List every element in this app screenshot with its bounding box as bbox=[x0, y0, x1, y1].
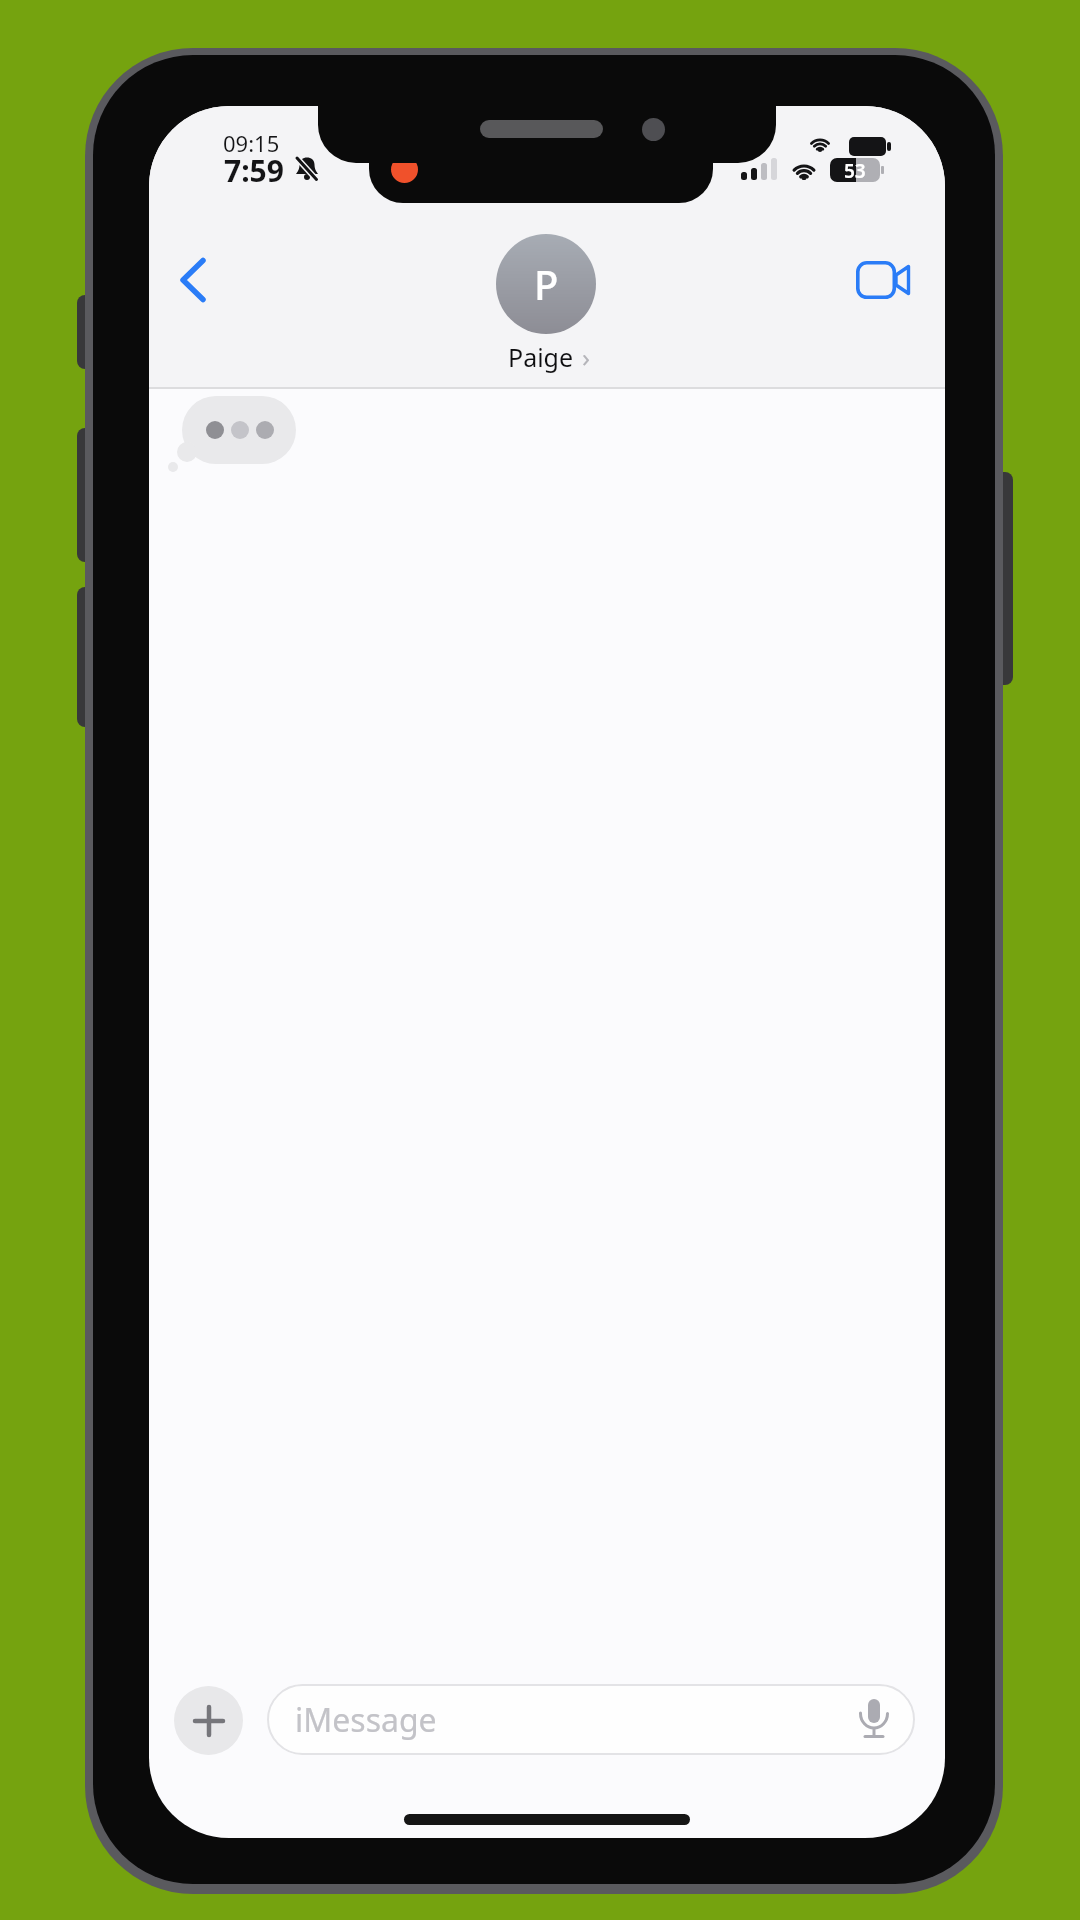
button[interactable] bbox=[839, 242, 929, 318]
staticText: › bbox=[582, 339, 591, 374]
button[interactable] bbox=[157, 244, 229, 316]
staticText: 53 bbox=[844, 158, 866, 182]
staticText: 7:59 bbox=[224, 150, 284, 186]
button[interactable]: P bbox=[496, 234, 596, 334]
staticText: iMessage bbox=[295, 1698, 437, 1742]
staticText: P bbox=[534, 257, 559, 311]
button[interactable] bbox=[174, 1686, 243, 1755]
button[interactable]: iMessage bbox=[267, 1684, 915, 1755]
staticText: Paige bbox=[508, 340, 574, 374]
staticText: 09:15 bbox=[223, 128, 280, 154]
